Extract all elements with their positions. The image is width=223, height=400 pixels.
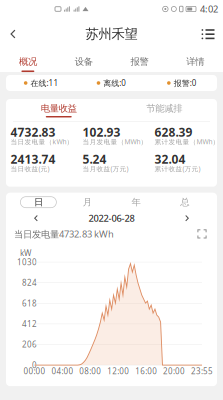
staticText: 16:00 bbox=[135, 366, 157, 376]
staticText: 当日发电量4732.83 kWh bbox=[14, 228, 114, 240]
staticText: 离线:0 bbox=[103, 78, 126, 88]
staticText: 详情 bbox=[186, 56, 204, 67]
staticText: 当日发电量（kWh） bbox=[10, 137, 73, 146]
staticText: 年 bbox=[131, 196, 140, 208]
staticText: 628.39 bbox=[154, 124, 192, 140]
button[interactable]: 设备 bbox=[56, 50, 112, 72]
staticText: 412 bbox=[22, 319, 37, 329]
staticText: 618 bbox=[22, 298, 37, 309]
staticText: kW bbox=[20, 248, 31, 258]
staticText: 在线:11 bbox=[30, 78, 58, 88]
button[interactable]: Previous day bbox=[26, 213, 46, 224]
staticText: 当月发电量（MWh） bbox=[82, 137, 147, 146]
staticText: 206 bbox=[22, 339, 37, 350]
staticText: 累计收益(万元) bbox=[154, 164, 200, 173]
button[interactable]: 总 bbox=[160, 197, 209, 208]
staticText: 月 bbox=[83, 196, 92, 208]
staticText: 苏州禾望 bbox=[85, 26, 137, 42]
staticText: 总 bbox=[180, 196, 189, 208]
staticText: 电量收益 bbox=[41, 103, 77, 114]
staticText: 08:00 bbox=[79, 366, 101, 376]
staticText: 23:55 bbox=[191, 366, 213, 376]
staticText: 2022-06-28 bbox=[88, 212, 134, 224]
button[interactable]: 详情 bbox=[167, 50, 223, 72]
staticText: 节能减排 bbox=[146, 103, 182, 114]
button[interactable]: 报警 bbox=[111, 50, 167, 72]
staticText: 报警 bbox=[130, 56, 148, 67]
staticText: 1030 bbox=[17, 257, 37, 267]
button[interactable]: 日 bbox=[14, 197, 63, 208]
staticText: 5.24 bbox=[82, 151, 106, 167]
staticText: 报警:0 bbox=[174, 78, 197, 88]
button[interactable]: 概况 bbox=[0, 50, 56, 72]
button[interactable]: Menu bbox=[193, 18, 223, 50]
staticText: 824 bbox=[22, 277, 37, 288]
button[interactable]: 年 bbox=[111, 197, 160, 208]
staticText: 0 bbox=[32, 360, 37, 370]
button[interactable]: Next day bbox=[177, 213, 197, 224]
button[interactable]: Fullscreen bbox=[195, 228, 209, 240]
staticText: 4:02 bbox=[200, 3, 218, 15]
button[interactable]: 节能减排 bbox=[111, 99, 217, 121]
staticText: 00:00 bbox=[23, 366, 45, 376]
staticText: 累计发电量（MWh） bbox=[154, 137, 219, 146]
staticText: 04:00 bbox=[51, 366, 73, 376]
staticText: 设备 bbox=[75, 56, 93, 67]
staticText: 当日收益(元) bbox=[10, 164, 49, 173]
staticText: 102.93 bbox=[82, 124, 120, 140]
staticText: 4732.83 bbox=[10, 124, 55, 140]
staticText: 12:00 bbox=[107, 366, 129, 376]
staticText: 32.04 bbox=[154, 151, 185, 167]
staticText: 概况 bbox=[19, 56, 37, 67]
button[interactable]: 月 bbox=[63, 197, 112, 208]
staticText: 2413.74 bbox=[10, 151, 55, 167]
staticText: 日 bbox=[34, 196, 43, 208]
staticText: 当月收益(万元) bbox=[82, 164, 128, 173]
button[interactable]: Back bbox=[0, 18, 26, 50]
button[interactable]: 电量收益 bbox=[6, 99, 111, 121]
staticText: 20:00 bbox=[163, 366, 185, 376]
